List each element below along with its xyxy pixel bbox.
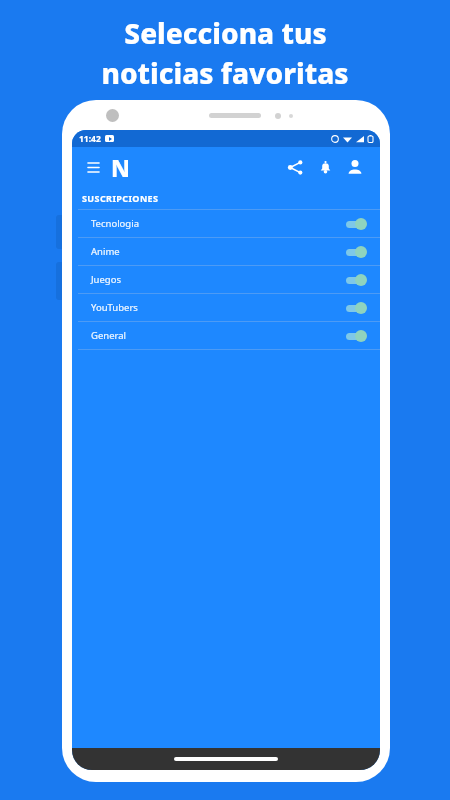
staticText: General xyxy=(91,329,127,342)
button[interactable]: Share xyxy=(280,152,310,182)
button[interactable]: Tecnologia xyxy=(72,210,380,237)
button[interactable]: Menu xyxy=(82,156,104,178)
staticText: YouTubers xyxy=(91,301,138,314)
button[interactable]: Anime xyxy=(72,238,380,265)
staticText: Tecnologia xyxy=(91,217,139,230)
staticText: Selecciona tus xyxy=(124,14,327,52)
button[interactable]: Account xyxy=(340,152,370,182)
staticText: noticias favoritas xyxy=(101,54,349,92)
button[interactable]: YouTubers xyxy=(72,294,380,321)
staticText: SUSCRIPCIONES xyxy=(82,192,159,204)
staticText: Anime xyxy=(91,245,120,258)
button[interactable]: Juegos xyxy=(72,266,380,293)
staticText: 11:42 xyxy=(79,133,101,145)
staticText: Juegos xyxy=(91,273,121,286)
staticText: N xyxy=(111,152,130,183)
button[interactable]: General xyxy=(72,322,380,349)
button[interactable]: Notifications xyxy=(310,152,340,182)
